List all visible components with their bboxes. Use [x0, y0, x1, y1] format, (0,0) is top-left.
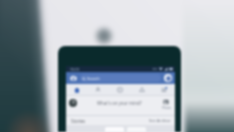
button[interactable]	[105, 127, 124, 132]
button[interactable]: Menu	[153, 84, 175, 96]
staticText: Stories	[71, 118, 86, 124]
button[interactable]: Profile	[69, 99, 77, 107]
button[interactable]: What's on your mind?	[82, 99, 157, 107]
button[interactable]: Home	[66, 84, 87, 96]
staticText: See Archive	[149, 118, 171, 123]
staticText: Search	[87, 76, 100, 81]
button[interactable]: Search	[80, 74, 161, 82]
staticText: Photo	[162, 106, 171, 110]
button[interactable]: Watch	[109, 84, 131, 96]
button[interactable]: See Archive	[149, 118, 171, 123]
button[interactable]	[127, 127, 146, 132]
button[interactable]: Friends	[87, 84, 109, 96]
button[interactable]: Notifications	[131, 84, 153, 96]
staticText: What's on your mind?	[97, 100, 142, 106]
staticText: 11:11	[70, 67, 80, 72]
button[interactable]: Photo	[160, 99, 172, 110]
button[interactable]: Messenger	[164, 74, 172, 82]
button[interactable]: Camera	[69, 74, 77, 82]
